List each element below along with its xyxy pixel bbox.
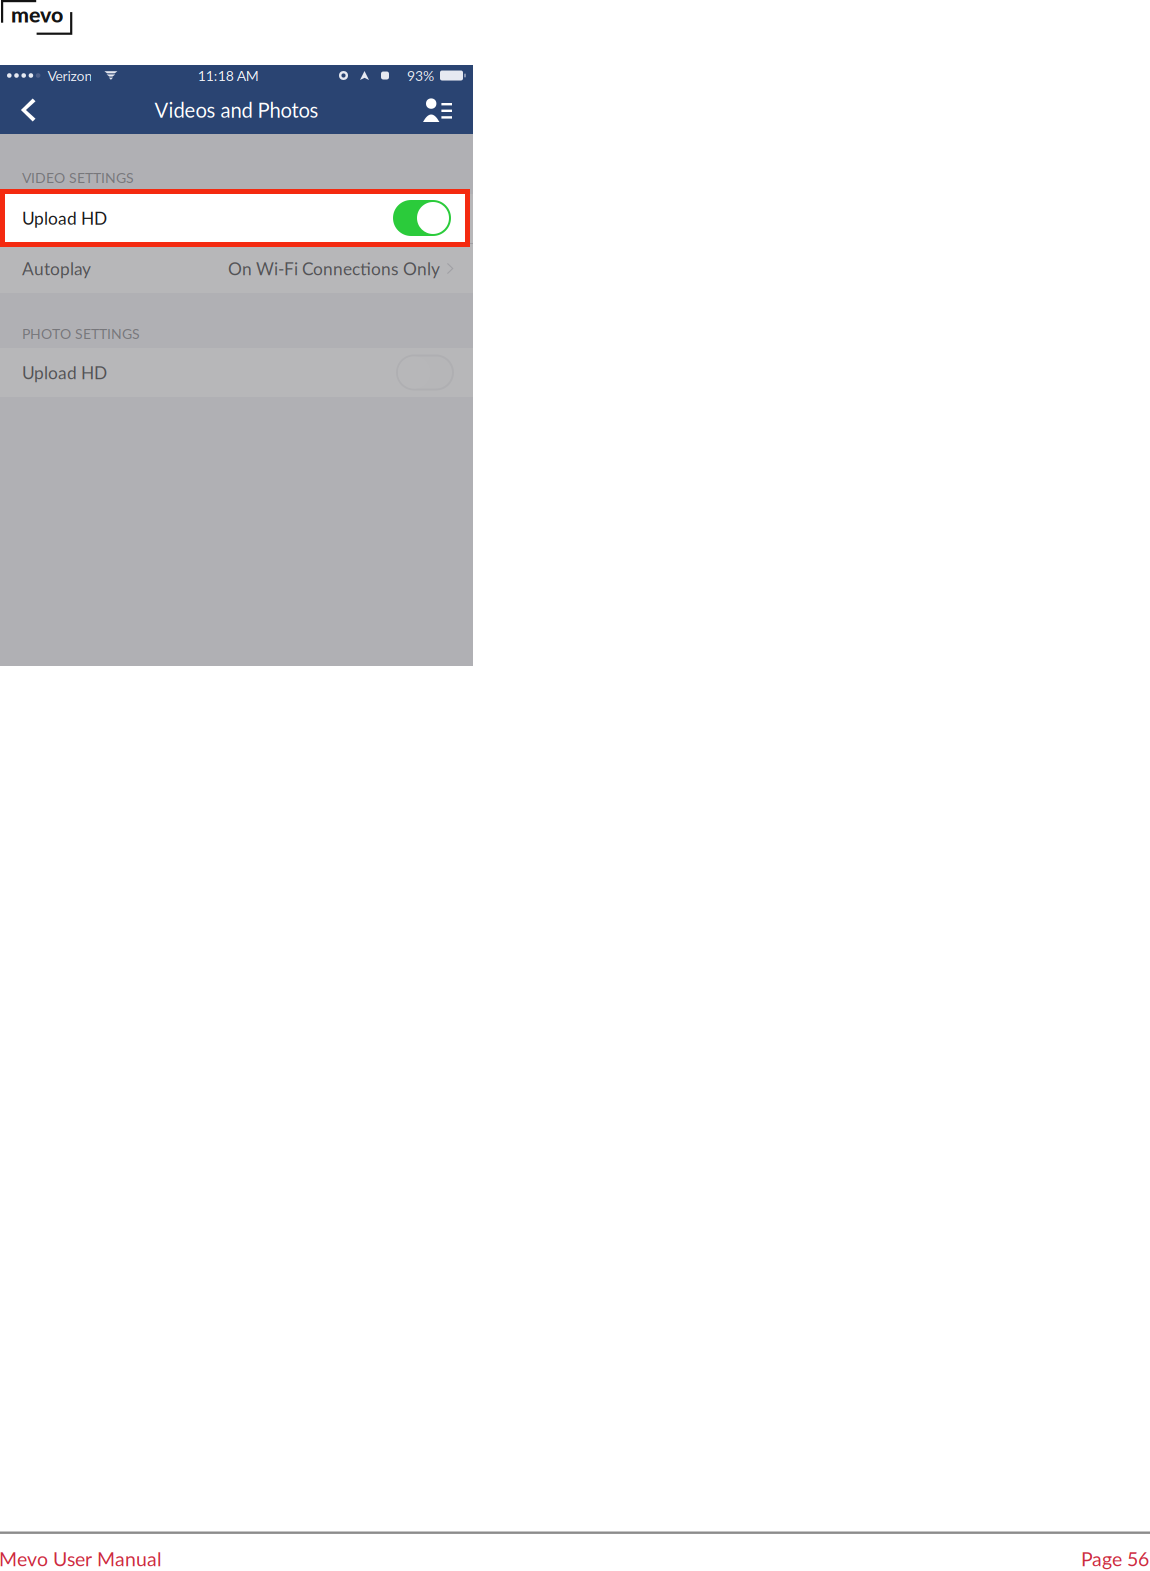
staticText — [348, 60, 360, 90]
staticText: mevo — [11, 1, 63, 27]
staticText: Videos and Photos — [154, 98, 318, 122]
button[interactable]: Account — [402, 86, 473, 134]
staticText — [369, 60, 381, 90]
staticText — [92, 60, 104, 90]
staticText: Page 56 — [1081, 1547, 1149, 1570]
staticText: Mevo User Manual — [0, 1547, 162, 1570]
button[interactable]: Autoplay — [0, 244, 473, 293]
staticText: PHOTO SETTINGS — [22, 325, 140, 342]
staticText: Autoplay — [22, 258, 91, 279]
staticText: VIDEO SETTINGS — [22, 169, 134, 186]
staticText: 93% — [407, 67, 434, 84]
button[interactable]: Upload HD — [0, 194, 473, 243]
staticText: 11:18 AM — [198, 67, 259, 84]
staticText: Upload HD — [22, 208, 107, 228]
staticText: Upload HD — [22, 362, 107, 383]
staticText: Upload HD — [22, 208, 107, 229]
staticText — [434, 60, 440, 90]
staticText — [389, 60, 407, 90]
button[interactable]: Back — [0, 86, 56, 134]
button[interactable]: Upload HD — [0, 348, 473, 397]
staticText: On Wi-Fi Connections Only — [228, 258, 440, 279]
staticText: Verizon — [40, 67, 92, 84]
